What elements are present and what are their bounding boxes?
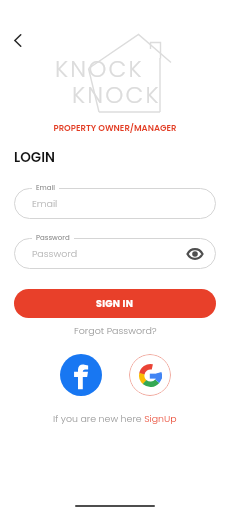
staticText: KNOCK — [55, 53, 144, 85]
staticText: Email — [32, 197, 58, 210]
button[interactable] — [14, 188, 216, 219]
staticText: KNOCK — [72, 79, 161, 111]
button[interactable]: If you are new here SignUp — [47, 409, 183, 428]
button[interactable] — [14, 238, 216, 269]
button[interactable]: SIGN IN — [14, 289, 216, 318]
staticText: Email — [36, 183, 55, 193]
button[interactable]: Sign in with Google — [129, 354, 171, 396]
staticText: SIGN IN — [96, 297, 134, 310]
staticText: Password — [32, 247, 78, 260]
staticText: PROPERTY OWNER/MANAGER — [0, 122, 230, 134]
button[interactable]: Toggle password visibility — [185, 244, 205, 264]
button[interactable]: Forgot Password? — [68, 321, 163, 340]
staticText: Password — [36, 233, 70, 243]
staticText: LOGIN — [14, 148, 55, 167]
button[interactable]: Back — [7, 30, 27, 50]
button[interactable]: Sign in with Facebook — [60, 354, 102, 396]
